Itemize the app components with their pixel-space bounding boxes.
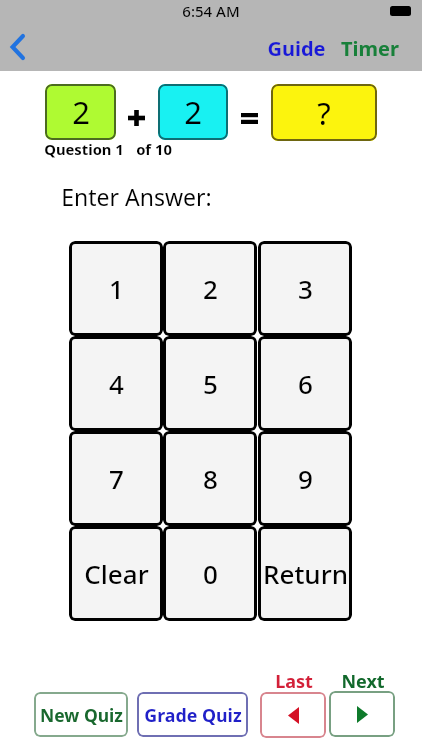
staticText: 2 — [203, 271, 218, 306]
button[interactable]: Grade Quiz — [137, 692, 248, 737]
button[interactable]: 0 — [163, 526, 257, 621]
staticText: 6:54 AM — [182, 1, 240, 21]
button[interactable]: 3 — [258, 241, 352, 336]
staticText: 2 — [72, 91, 90, 133]
button[interactable]: 2 — [163, 241, 257, 336]
button[interactable]: Next question — [329, 691, 395, 737]
staticText: New Quiz — [40, 703, 123, 727]
staticText: 0 — [203, 556, 218, 591]
staticText: Guide — [267, 35, 326, 62]
button[interactable]: 9 — [258, 431, 352, 526]
staticText: 2 — [184, 91, 202, 133]
staticText: Last — [275, 669, 313, 694]
button[interactable]: 6 — [258, 336, 352, 431]
button[interactable]: Guide — [265, 32, 328, 65]
button[interactable]: Timer — [339, 32, 401, 65]
staticText: 6 — [298, 366, 313, 401]
staticText: Question 1 — [44, 139, 124, 159]
staticText: Grade Quiz — [144, 703, 242, 727]
staticText: 5 — [203, 366, 218, 401]
button[interactable]: New Quiz — [34, 692, 128, 737]
staticText: 1 — [109, 271, 124, 306]
button[interactable]: 4 — [69, 336, 163, 431]
staticText: Enter Answer: — [61, 181, 212, 212]
staticText: 4 — [109, 366, 124, 401]
button[interactable]: 1 — [69, 241, 163, 336]
button[interactable]: Clear — [69, 526, 163, 621]
staticText: ? — [317, 92, 331, 134]
button[interactable]: Last question — [260, 692, 326, 738]
button[interactable]: 7 — [69, 431, 163, 526]
staticText: Timer — [341, 35, 399, 62]
button[interactable]: 5 — [163, 336, 257, 431]
staticText: 7 — [109, 461, 124, 496]
staticText: Return — [263, 556, 348, 591]
button[interactable]: Return — [258, 526, 352, 621]
staticText: Clear — [84, 556, 149, 591]
staticText: 8 — [203, 461, 218, 496]
button[interactable]: 8 — [163, 431, 257, 526]
staticText: 3 — [298, 271, 313, 306]
staticText: 9 — [298, 461, 313, 496]
button[interactable]: Back — [0, 30, 34, 64]
staticText: Next — [341, 669, 385, 694]
staticText: of 10 — [136, 139, 172, 159]
